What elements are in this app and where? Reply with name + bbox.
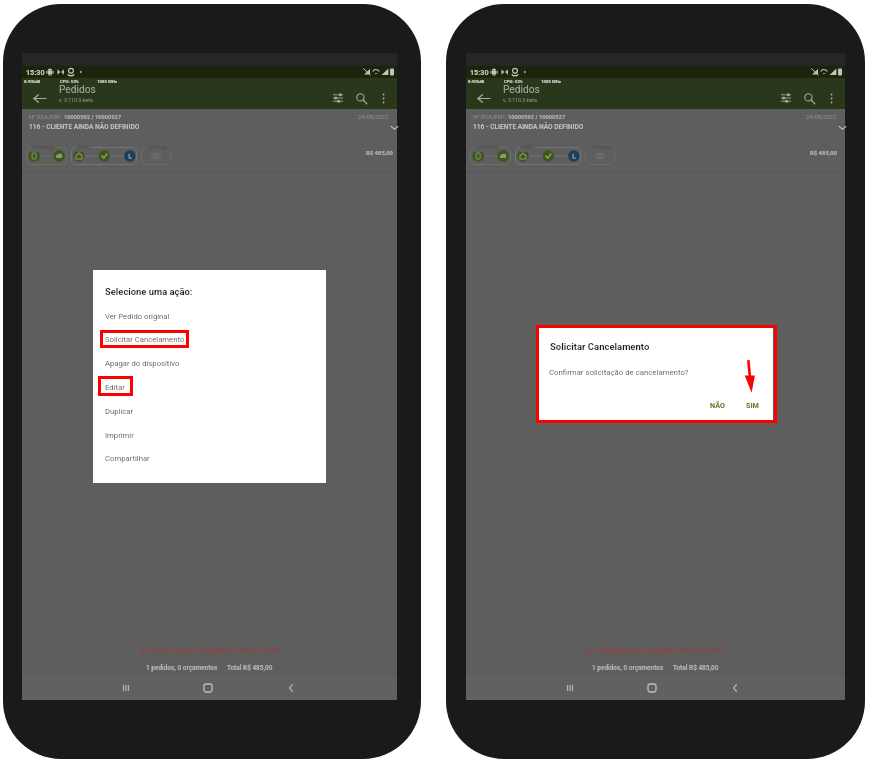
button[interactable]: [585, 147, 615, 165]
button[interactable]: Pesquisar: [350, 87, 372, 109]
staticText: 24/08/2022: [806, 114, 837, 121]
staticText: Pedidos: [59, 84, 96, 96]
button[interactable]: [470, 147, 511, 165]
staticText: Máxima: [477, 144, 498, 151]
staticText: 1 pedidos, 0 orçamentos: [592, 664, 664, 672]
staticText: Total R$ 485,00: [673, 664, 719, 672]
staticText: v. 3.110.3-beta: [503, 97, 537, 103]
staticText: ERP: [78, 144, 89, 151]
staticText: v. 3.110.3-beta: [59, 97, 93, 103]
button[interactable]: Apagar do dispositivo: [93, 351, 326, 375]
button[interactable]: Voltar: [471, 86, 495, 110]
staticText: Nº RCA/ERP:: [29, 114, 64, 121]
button[interactable]: Filtros: [327, 87, 349, 109]
staticText: 1085 MHz: [97, 79, 117, 84]
staticText: 1 pedidos, 0 orçamentos: [146, 664, 218, 672]
staticText: Pedidos: [503, 84, 540, 96]
staticText: Selecione uma ação:: [105, 286, 193, 297]
staticText: 24/08/2022: [358, 114, 389, 121]
staticText: 8:905dB: [468, 79, 485, 84]
staticText: 1085 MHz: [541, 79, 561, 84]
staticText: CPU: 53%: [504, 79, 523, 84]
button[interactable]: [26, 147, 67, 165]
button[interactable]: NÃO: [703, 396, 731, 413]
staticText: Ver Pedido original: [105, 312, 170, 321]
staticText: 15:30: [26, 68, 45, 76]
staticText: 116 - CLIENTE AINDA NÃO DEFINIDO: [29, 123, 140, 131]
button[interactable]: [141, 147, 171, 165]
button[interactable]: Mais opções: [820, 87, 842, 109]
button[interactable]: Início: [632, 676, 672, 700]
staticText: Editar: [105, 383, 125, 392]
staticText: SIM: [746, 401, 759, 409]
staticText: 10000592 / 10000527: [64, 114, 122, 121]
staticText: Período de envio de pedidos: 08:00 às 23…: [595, 647, 725, 655]
staticText: Compartilhar: [105, 454, 150, 463]
button[interactable]: SIM: [738, 396, 766, 413]
staticText: Nº RCA/ERP:: [473, 114, 508, 121]
staticText: Imprimir: [105, 431, 134, 440]
staticText: 116 - CLIENTE AINDA NÃO DEFINIDO: [473, 123, 584, 131]
button[interactable]: Editar: [93, 375, 326, 399]
button[interactable]: Voltar: [27, 86, 51, 110]
button[interactable]: Imprimir: [93, 423, 326, 447]
button[interactable]: Mais opções: [372, 87, 394, 109]
staticText: Confirmar solicitação de cancelamento?: [549, 368, 689, 377]
button[interactable]: [515, 147, 581, 165]
staticText: ERP: [522, 144, 533, 151]
staticText: R$ 485,00: [810, 150, 837, 157]
button[interactable]: Filtros: [775, 87, 797, 109]
button[interactable]: [71, 147, 137, 165]
staticText: 15:30: [470, 68, 489, 76]
staticText: Solicitar Cancelamento: [105, 335, 185, 344]
button[interactable]: Recentes: [106, 676, 146, 700]
button[interactable]: Voltar: [715, 676, 755, 700]
staticText: R$ 485,00: [366, 150, 393, 157]
staticText: CPU: 53%: [60, 79, 79, 84]
button[interactable]: Solicitar Cancelamento: [93, 327, 326, 351]
button[interactable]: Pesquisar: [798, 87, 820, 109]
staticText: Solicitar Cancelamento: [550, 341, 650, 352]
button[interactable]: Compartilhar: [93, 446, 326, 470]
staticText: Máxima: [33, 144, 54, 151]
staticText: NÃO: [710, 401, 725, 409]
staticText: 10000592 / 10000527: [508, 114, 566, 121]
staticText: Duplicar: [105, 407, 134, 416]
staticText: Apagar do dispositivo: [105, 359, 180, 368]
staticText: Entrega: [148, 144, 168, 151]
button[interactable]: Nº RCA/ERP:: [466, 109, 845, 171]
staticText: Entrega: [592, 144, 612, 151]
button[interactable]: Nº RCA/ERP:: [22, 109, 397, 171]
button[interactable]: Duplicar: [93, 399, 326, 423]
staticText: Período de envio de pedidos: 08:00 às 23…: [149, 647, 279, 655]
button[interactable]: Voltar: [271, 676, 311, 700]
staticText: 8:905dB: [24, 79, 41, 84]
button[interactable]: Ver Pedido original: [93, 304, 326, 328]
staticText: Total R$ 485,00: [227, 664, 273, 672]
button[interactable]: Início: [188, 676, 228, 700]
button[interactable]: Recentes: [550, 676, 590, 700]
